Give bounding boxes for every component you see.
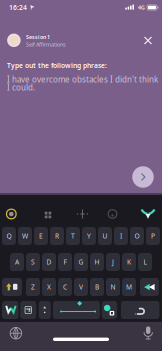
staticText: I could.	[7, 82, 35, 93]
button[interactable]: Layouts	[41, 208, 54, 221]
button[interactable]: V	[74, 278, 88, 296]
button[interactable]: C	[58, 278, 72, 296]
staticText: D	[46, 258, 51, 266]
staticText: T	[71, 232, 75, 240]
staticText: E	[39, 232, 43, 240]
button[interactable]: Dictation	[142, 326, 154, 340]
staticText: V	[79, 283, 83, 291]
staticText: O	[134, 232, 139, 240]
staticText: L	[143, 258, 146, 266]
button[interactable]: Z	[26, 278, 40, 296]
staticText: W	[22, 232, 28, 240]
button[interactable]: Next keyboard	[9, 326, 23, 340]
button[interactable]: Space	[53, 301, 100, 319]
button[interactable]: S	[26, 253, 40, 271]
button[interactable]: Profile	[5, 207, 18, 220]
button[interactable]: H	[90, 253, 104, 271]
staticText: P	[151, 232, 155, 240]
button[interactable]: A	[10, 253, 24, 271]
button[interactable]: Y	[82, 227, 96, 245]
staticText: 4G	[138, 4, 145, 11]
staticText: Type out the following phrase:	[7, 61, 107, 70]
button[interactable]: Settings	[106, 207, 119, 220]
staticText: 16:24	[9, 3, 27, 12]
staticText: C	[63, 283, 67, 291]
staticText: X	[47, 283, 51, 291]
staticText: I	[120, 232, 122, 240]
staticText: M	[126, 283, 132, 291]
staticText: Session 1	[26, 33, 50, 41]
staticText: Q	[6, 232, 11, 240]
button[interactable]: B	[90, 278, 104, 296]
button[interactable]: N	[106, 278, 120, 296]
button[interactable]: P	[146, 227, 160, 245]
button[interactable]: Close	[140, 32, 156, 48]
staticText: N	[110, 283, 115, 291]
staticText: S	[31, 258, 35, 266]
staticText: A	[15, 258, 19, 266]
staticText: G	[78, 258, 83, 266]
staticText: F	[63, 258, 66, 266]
staticText: K	[127, 258, 131, 266]
button[interactable]: J	[106, 253, 120, 271]
staticText: J	[112, 258, 114, 266]
button[interactable]: W	[18, 227, 32, 245]
staticText: Y	[87, 232, 91, 240]
button[interactable]: Return	[121, 301, 159, 319]
button[interactable]: K	[122, 253, 136, 271]
button[interactable]: Shift	[2, 278, 22, 296]
staticText: R	[55, 232, 59, 240]
button[interactable]: Stickers	[102, 301, 117, 319]
button[interactable]: Keyboard menu	[140, 207, 156, 220]
staticText: Self Affirmations	[26, 41, 66, 48]
button[interactable]: R	[50, 227, 64, 245]
button[interactable]: F	[58, 253, 72, 271]
button[interactable]: Delete	[140, 278, 159, 296]
button[interactable]: X	[42, 278, 56, 296]
button[interactable]: U	[98, 227, 112, 245]
staticText: Z	[31, 283, 35, 291]
button[interactable]: Emoji	[20, 301, 36, 319]
staticText: I have overcome obstacles I didn't think	[7, 74, 158, 85]
button[interactable]: Cursor control	[76, 207, 89, 220]
button[interactable]: L	[138, 253, 152, 271]
staticText: U	[102, 232, 107, 240]
button[interactable]: Punctuation	[39, 301, 51, 319]
button[interactable]: O	[130, 227, 144, 245]
button[interactable]: Q	[2, 227, 16, 245]
button[interactable]: E	[34, 227, 48, 245]
button[interactable]: Next	[132, 166, 154, 188]
button[interactable]: M	[122, 278, 136, 296]
button[interactable]: Symbols	[2, 301, 18, 319]
staticText: B	[95, 283, 99, 291]
button[interactable]: D	[42, 253, 56, 271]
button[interactable]: G	[74, 253, 88, 271]
button[interactable]: T	[66, 227, 80, 245]
staticText: H	[94, 258, 99, 266]
button[interactable]: I	[114, 227, 128, 245]
